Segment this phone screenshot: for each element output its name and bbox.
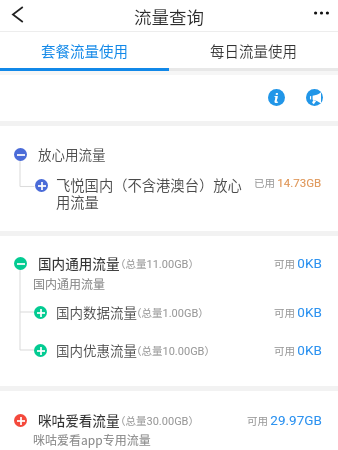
- staticText: 放心用流量: [38, 144, 106, 164]
- button[interactable]: 国内通用流量: [14, 251, 322, 275]
- button[interactable]: More options: [304, 0, 338, 32]
- staticText: 可用 0KB: [274, 255, 322, 271]
- button[interactable]: Announcement: [306, 89, 323, 106]
- staticText: 可用 29.97GB: [247, 412, 322, 428]
- button[interactable]: 飞悦国内（不含港澳台）放心用流量: [0, 172, 338, 216]
- staticText: 每日流量使用: [210, 40, 297, 61]
- staticText: 国内优惠流量: [56, 340, 137, 360]
- staticText: i: [274, 90, 279, 106]
- staticText: 国内数据流量: [56, 302, 137, 322]
- staticText: 套餐流量使用: [41, 40, 128, 61]
- staticText: （总量11.00GB）: [115, 256, 199, 271]
- button[interactable]: Back: [0, 0, 34, 32]
- staticText: 已用 14.73GB: [254, 175, 322, 190]
- staticText: 咪咕爱看流量: [38, 410, 120, 430]
- staticText: 流量查询: [134, 4, 204, 29]
- staticText: 国内通用流量: [38, 253, 120, 273]
- staticText: 咪咕爱看app专用流量: [33, 431, 151, 448]
- staticText: （总量30.00GB）: [115, 413, 199, 428]
- staticText: 国内通用流量: [33, 275, 106, 292]
- button[interactable]: 咪咕爱看流量: [14, 408, 322, 432]
- button[interactable]: 套餐流量使用: [0, 32, 169, 68]
- staticText: 可用 0KB: [274, 342, 322, 358]
- button[interactable]: 国内数据流量: [34, 300, 322, 324]
- button[interactable]: 国内优惠流量: [34, 338, 322, 362]
- staticText: 飞悦国内（不含港澳台）放心用流量: [56, 174, 254, 213]
- staticText: （总量1.00GB）: [131, 305, 209, 320]
- button[interactable]: Info: [268, 89, 285, 106]
- button[interactable]: 每日流量使用: [169, 32, 338, 68]
- staticText: （总量10.00GB）: [131, 343, 215, 358]
- button[interactable]: 放心用流量: [14, 142, 338, 166]
- staticText: 可用 0KB: [274, 304, 322, 320]
